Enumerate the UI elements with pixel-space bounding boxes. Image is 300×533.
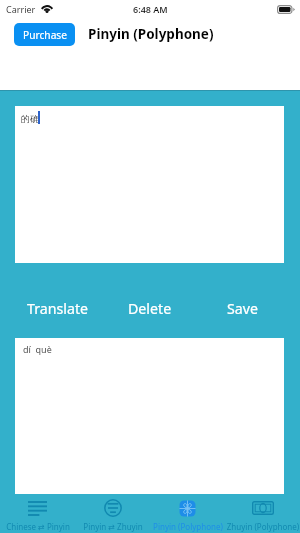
staticText: Pinyin (Polyphone) <box>143 521 233 532</box>
staticText: Delete <box>128 299 172 318</box>
button[interactable]: Chinese ⇄ Pinyin <box>0 494 75 532</box>
button[interactable]: Zhuyin (Polyphone) <box>225 494 300 532</box>
staticText: Translate <box>27 299 89 318</box>
staticText: Zhuyin (Polyphone) <box>218 521 300 532</box>
button[interactable]: Pinyin ⇄ Zhuyin <box>75 494 150 532</box>
button[interactable]: Save <box>196 293 288 323</box>
staticText: Chinese ⇄ Pinyin <box>0 521 83 532</box>
staticText: Carrier <box>6 3 36 15</box>
staticText: Pinyin (Polyphone) <box>88 25 214 43</box>
staticText: 的确 <box>21 113 39 124</box>
button[interactable]: Purchase <box>14 23 75 46</box>
staticText: Save <box>227 299 258 318</box>
staticText: Purchase <box>23 28 67 42</box>
staticText: Pinyin ⇄ Zhuyin <box>68 521 158 532</box>
button[interactable]: Pinyin (Polyphone) <box>150 494 225 532</box>
staticText: 6:48 AM <box>133 3 168 15</box>
button[interactable]: Translate <box>12 293 104 323</box>
staticText: dí què <box>23 343 52 355</box>
button[interactable]: Delete <box>104 293 196 323</box>
